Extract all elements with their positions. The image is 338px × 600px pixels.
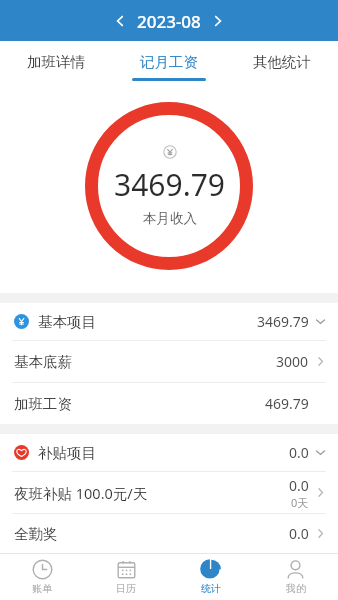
button[interactable]: 日历 — [84, 554, 168, 600]
staticText: 3469.79 — [114, 164, 225, 205]
staticText: 3000 — [276, 352, 309, 371]
staticText: 统计 — [201, 582, 221, 595]
staticText: 3469.79 — [257, 312, 309, 331]
button[interactable]: 加班工资 — [0, 383, 338, 424]
staticText: 0天 — [291, 495, 309, 510]
staticText: 469.79 — [265, 394, 309, 413]
staticText: 补贴项目 — [38, 444, 96, 462]
staticText: 记月工资 — [140, 53, 198, 71]
button[interactable]: 其他统计 — [225, 41, 338, 84]
button[interactable]: 补贴项目 — [0, 434, 338, 471]
button[interactable]: 账单 — [0, 554, 84, 600]
button[interactable]: 基本底薪 — [0, 341, 338, 382]
staticText: 2023-08 — [137, 10, 201, 33]
staticText: 0.0 — [289, 476, 309, 495]
staticText: 其他统计 — [253, 53, 311, 71]
staticText: 加班工资 — [14, 395, 72, 413]
button[interactable]: Previous month — [107, 8, 133, 34]
staticText: 账单 — [32, 582, 52, 595]
staticText: 本月收入 — [143, 210, 197, 227]
button[interactable]: 夜班补贴 100.0元/天 — [0, 472, 338, 513]
button[interactable]: 全勤奖 — [0, 514, 338, 553]
button[interactable]: 统计 — [168, 554, 253, 600]
button[interactable]: 3469.79 — [85, 102, 253, 270]
staticText: 夜班补贴 100.0元/天 — [14, 483, 148, 503]
staticText: 日历 — [116, 582, 136, 595]
staticText: 基本底薪 — [14, 353, 72, 371]
staticText: 0.0 — [289, 524, 309, 543]
button[interactable]: 加班详情 — [0, 41, 112, 84]
staticText: 0.0 — [289, 443, 309, 462]
staticText: 我的 — [286, 582, 306, 595]
staticText: 全勤奖 — [14, 525, 58, 543]
button[interactable]: 我的 — [253, 554, 338, 600]
button[interactable]: Next month — [205, 8, 231, 34]
staticText: 基本项目 — [38, 313, 96, 331]
staticText: 加班详情 — [27, 53, 85, 71]
button[interactable]: 基本项目 — [0, 303, 338, 340]
button[interactable]: 记月工资 — [112, 41, 225, 84]
